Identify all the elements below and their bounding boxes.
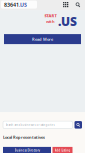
button[interactable]: Business Directory bbox=[3, 147, 51, 153]
button[interactable]: Search area businesses or categories bbox=[3, 121, 72, 129]
button[interactable]: Search bbox=[74, 121, 82, 129]
button[interactable]: 83641 bbox=[1, 1, 37, 9]
staticText: .US bbox=[19, 1, 27, 8]
staticText: .US bbox=[58, 13, 77, 29]
staticText: with bbox=[46, 19, 55, 24]
staticText: Read More bbox=[32, 36, 53, 42]
staticText: Business Directory bbox=[14, 149, 39, 152]
staticText: Add Listing bbox=[54, 149, 70, 152]
staticText: Search area businesses or categories bbox=[5, 123, 54, 127]
staticText: 83641 bbox=[4, 1, 19, 8]
staticText: START bbox=[44, 13, 56, 18]
button[interactable]: Read More bbox=[4, 34, 81, 44]
staticText: Local Representatives bbox=[3, 135, 45, 140]
button[interactable]: Menu bbox=[62, 1, 70, 9]
button[interactable]: Add Listing bbox=[52, 147, 72, 153]
button[interactable]: Search bbox=[74, 0, 82, 9]
